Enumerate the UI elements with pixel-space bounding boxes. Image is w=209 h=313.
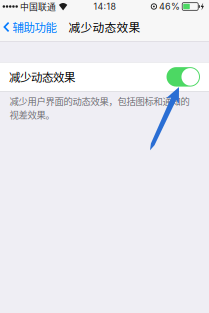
button[interactable]: 辅助功能 — [0, 14, 56, 40]
staticText: 辅助功能 — [12, 19, 56, 35]
staticText: 46% — [159, 1, 180, 12]
staticText: 减少用户界面的动态效果，包括图标和通知的视差效果。 — [9, 94, 189, 121]
button[interactable]: 减少动态效果 — [0, 63, 209, 91]
staticText: 减少动态效果 — [9, 68, 75, 85]
staticText: 中国联通 — [20, 0, 56, 13]
staticText: 减少动态效果 — [68, 18, 140, 35]
staticText: 14:18 — [93, 1, 115, 12]
